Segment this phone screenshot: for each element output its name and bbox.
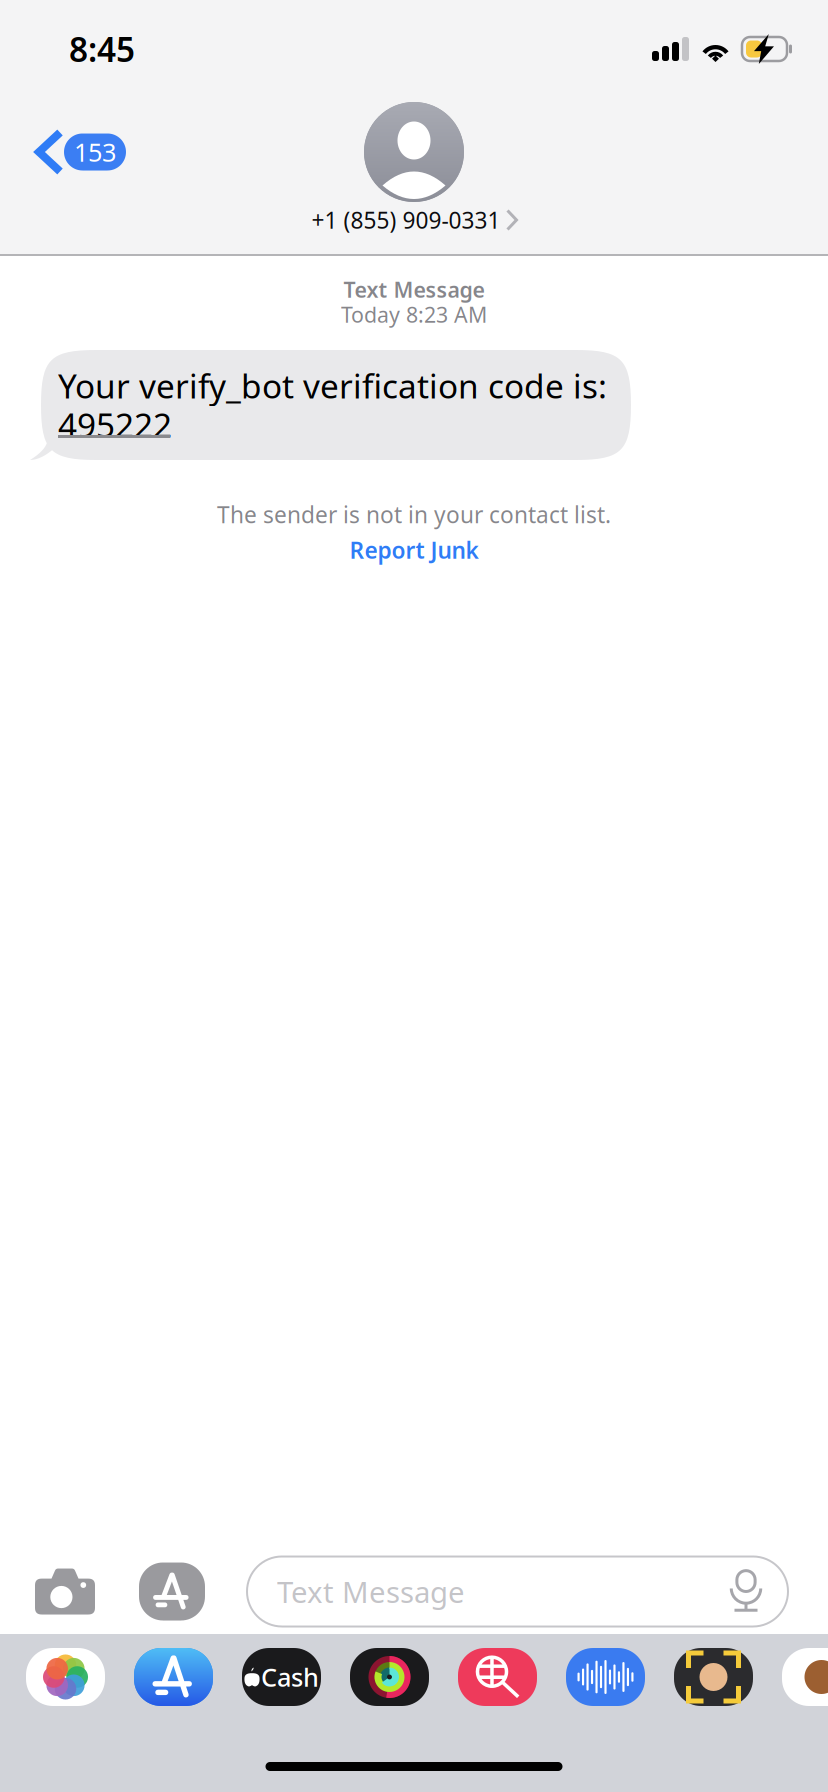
staticText: 8:45: [69, 27, 135, 71]
staticText: Today 8:23 AM: [341, 300, 487, 329]
staticText: 495222: [58, 402, 172, 447]
staticText: Report Junk: [349, 535, 478, 565]
staticText: The sender is not in your contact list.: [217, 499, 611, 529]
button[interactable]: Photos: [26, 1648, 134, 1706]
button[interactable]: Music Recognition: [458, 1648, 566, 1706]
button[interactable]: Memoji: [674, 1648, 782, 1706]
button[interactable]: Memoji Stickers: [782, 1648, 828, 1706]
button[interactable]: Camera: [0, 1543, 139, 1639]
button[interactable]: 153: [0, 126, 126, 178]
staticText: Text Message: [343, 275, 484, 304]
button[interactable]: Apple Cash: [242, 1648, 350, 1706]
button[interactable]: Voice Memos: [566, 1648, 674, 1706]
button[interactable]: App Store: [139, 1543, 205, 1639]
staticText: Your verify_bot verification code is:: [58, 363, 607, 408]
button[interactable]: +1 (855) 909-0331: [311, 102, 516, 238]
button[interactable]: Report Junk: [349, 536, 478, 564]
staticText: Cash: [261, 1660, 319, 1694]
button[interactable]: Fitness: [350, 1648, 458, 1706]
button[interactable]: App Store: [134, 1648, 242, 1706]
staticText: 153: [74, 135, 116, 169]
staticText: Text Message: [277, 1572, 465, 1611]
staticText: +1 (855) 909-0331: [311, 205, 500, 235]
